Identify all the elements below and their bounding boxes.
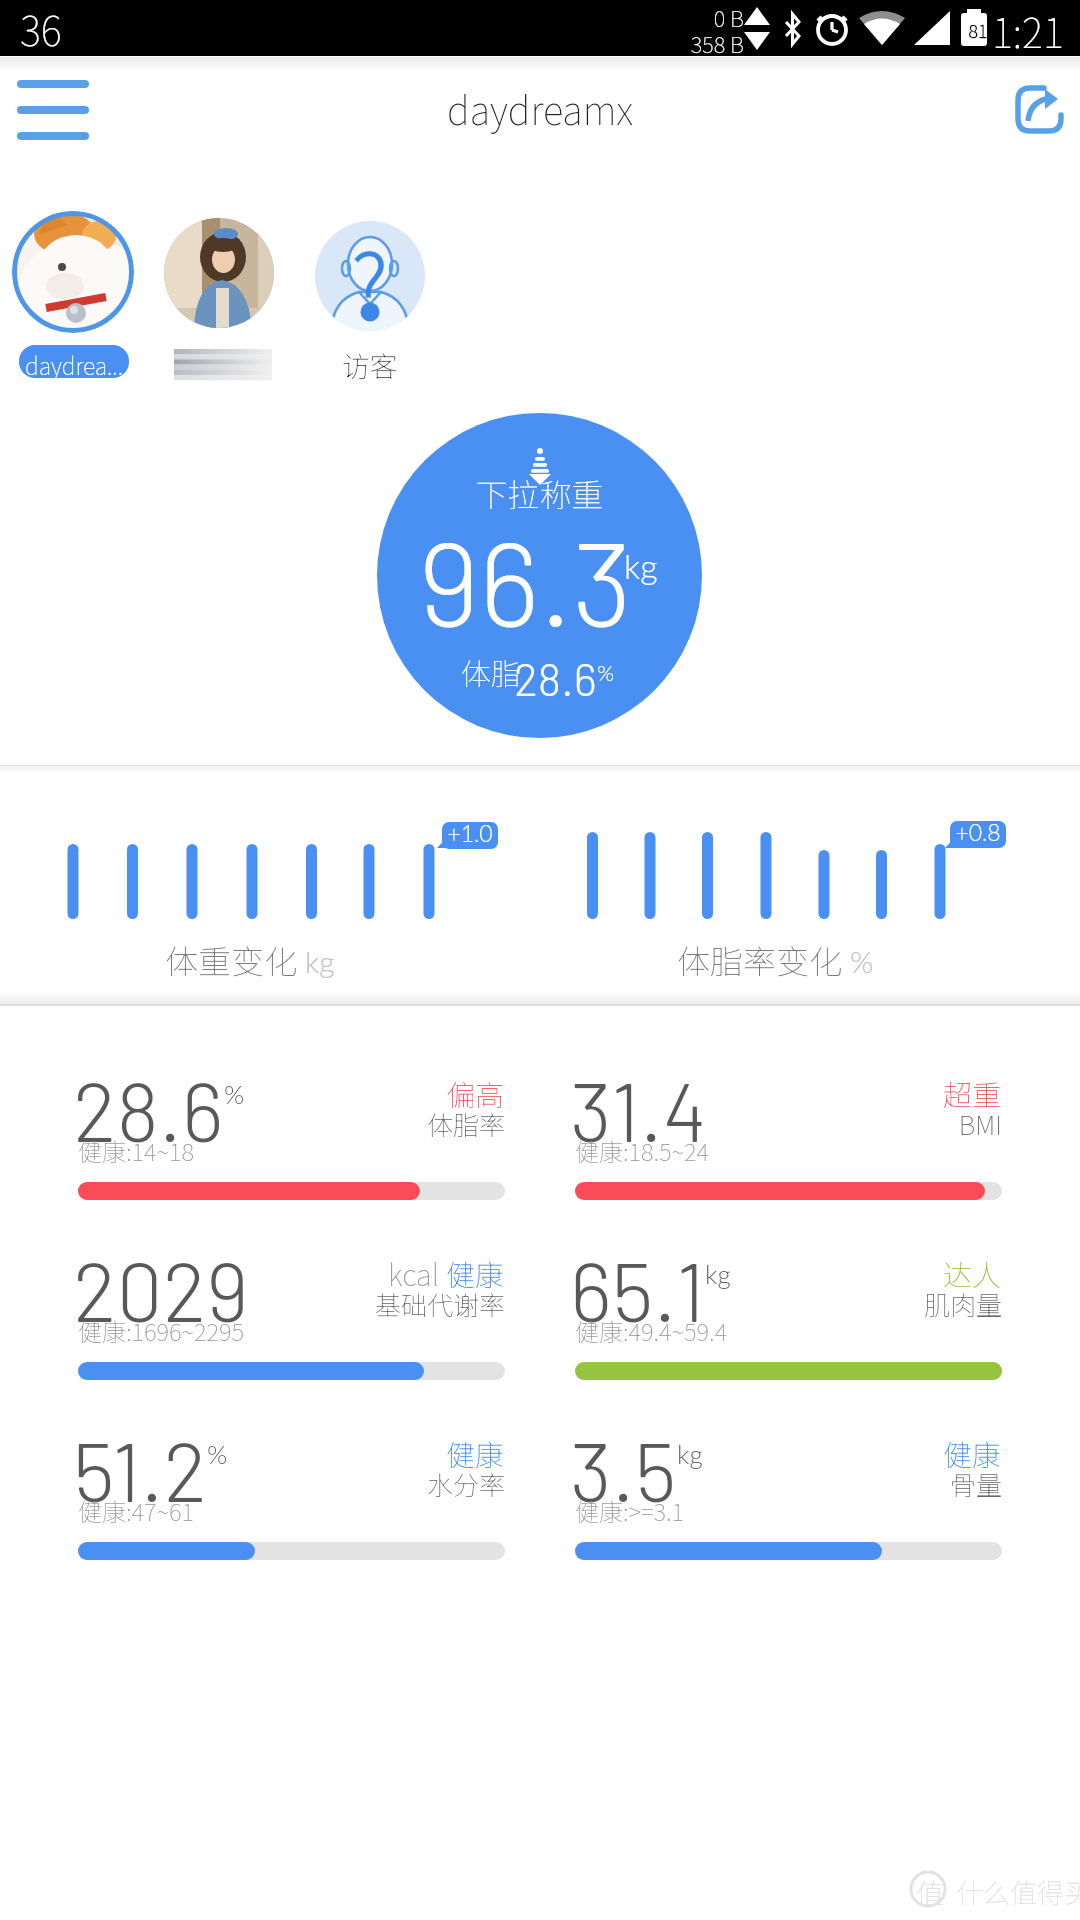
staticText: 2029 (73, 1240, 249, 1338)
staticText: 健康:14~18 (78, 1133, 195, 1168)
staticText: 什么值得买 (956, 1872, 1080, 1911)
staticText: 36 (20, 0, 62, 56)
staticText: 值 (916, 1872, 945, 1913)
staticText: 下拉称重 (377, 470, 702, 516)
staticText: 健康 (446, 1432, 505, 1474)
button[interactable]: 31.4 (575, 1083, 1002, 1208)
button[interactable] (12, 211, 134, 333)
button[interactable] (0, 766, 1080, 992)
staticText: 肌肉量 (575, 1285, 1002, 1323)
staticText: 达人 (943, 1252, 1002, 1294)
staticText: % (597, 659, 615, 685)
staticText: kg (624, 545, 658, 586)
staticText: 96.3 (418, 509, 633, 651)
staticText: % (850, 943, 874, 979)
button[interactable]: 下拉称重 (377, 413, 702, 738)
button[interactable]: 3.5 (575, 1443, 1002, 1568)
staticText: kg (705, 1258, 731, 1289)
staticText: kcal (388, 1252, 446, 1294)
staticText: 基础代谢率 (78, 1285, 505, 1323)
staticText: % (224, 1078, 245, 1109)
staticText: 28.6 (73, 1060, 224, 1158)
staticText: ? (315, 221, 425, 331)
staticText: 水分率 (78, 1465, 505, 1503)
button[interactable] (17, 78, 91, 142)
staticText: 健康:49.4~59.4 (575, 1313, 728, 1348)
staticText: 健康 (943, 1432, 1002, 1474)
staticText: kg (305, 943, 335, 979)
staticText: 体脂 (461, 650, 521, 693)
staticText: BMI (575, 1105, 1002, 1143)
staticText: 3.5 (570, 1420, 677, 1518)
staticText: 偏高 (446, 1072, 505, 1114)
button[interactable]: daydrea... (19, 345, 129, 378)
staticText: 81 (965, 17, 991, 43)
staticText: 1:21 (992, 2, 1072, 58)
staticText: 健康:18.5~24 (575, 1133, 710, 1168)
button[interactable] (164, 218, 274, 328)
staticText: 0 B (698, 1, 744, 33)
staticText: 体脂率 (78, 1105, 505, 1143)
staticText: 访客 (315, 345, 425, 386)
staticText: 健康:1696~2295 (78, 1313, 245, 1348)
staticText: 51.2 (73, 1420, 207, 1518)
staticText: 体重变化 (165, 936, 305, 984)
button[interactable]: ? (315, 221, 425, 331)
staticText: 健康:>=3.1 (575, 1493, 685, 1528)
staticText: % (207, 1438, 228, 1469)
staticText: 31.4 (570, 1060, 707, 1158)
staticText: daydrea... (19, 348, 129, 378)
button[interactable] (1012, 82, 1068, 138)
staticText: 28.6 (514, 651, 597, 705)
staticText: 体脂率变化 (677, 936, 850, 984)
staticText: 358 B (676, 27, 744, 59)
staticText: 骨量 (575, 1465, 1002, 1503)
staticText: 健康:47~61 (78, 1493, 195, 1528)
button[interactable]: 65.1 (575, 1263, 1002, 1388)
button[interactable]: 2029 (78, 1263, 505, 1388)
staticText: kg (677, 1438, 703, 1469)
button[interactable]: 51.2 (78, 1443, 505, 1568)
staticText: 超重 (943, 1072, 1002, 1114)
staticText: 65.1 (570, 1240, 705, 1338)
staticText: 健康 (446, 1252, 505, 1294)
staticText: daydreamx (0, 81, 1080, 136)
staticText: +1.0 (442, 822, 498, 846)
button[interactable]: 28.6 (78, 1083, 505, 1208)
staticText: +0.8 (950, 821, 1006, 845)
